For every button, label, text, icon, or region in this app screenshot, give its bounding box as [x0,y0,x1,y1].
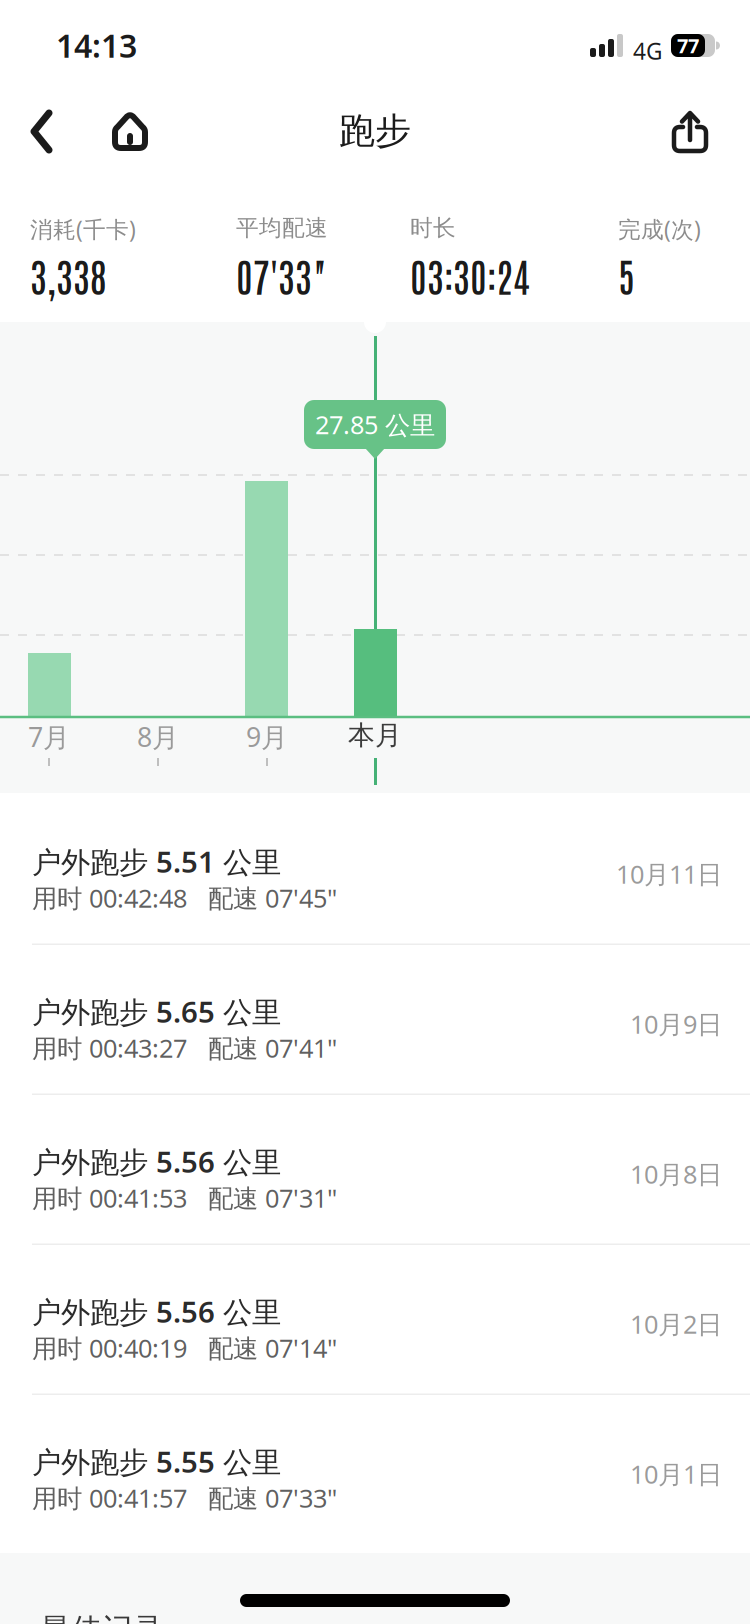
staticText: 配速 07'33" [208,1481,337,1515]
staticText: 户外跑步 5.56 公里 [32,1142,281,1181]
staticText: 户外跑步 5.65 公里 [32,992,281,1031]
staticText: 用时 00:40:19 [32,1331,187,1365]
staticText: 3,338 [30,250,107,300]
button[interactable] [29,109,55,154]
staticText: 9月 [246,719,288,754]
staticText: 时长 [410,214,456,242]
button[interactable]: 户外跑步 5.55 公里 [0,1395,750,1545]
staticText: 户外跑步 5.55 公里 [32,1442,281,1481]
staticText: 07'33" [236,250,327,300]
button[interactable] [672,109,708,153]
staticText: 10月8日 [630,1157,722,1191]
button[interactable]: 户外跑步 5.56 公里 [0,1245,750,1395]
staticText: 8月 [137,719,179,754]
staticText: 完成(次) [618,214,701,244]
staticText: 平均配速 [236,214,328,242]
staticText: 10月1日 [630,1457,722,1491]
staticText: 03:30:24 [410,250,530,300]
staticText: 用时 00:43:27 [32,1031,187,1065]
staticText: 配速 07'14" [208,1331,337,1365]
button[interactable]: 户外跑步 5.51 公里 [0,795,750,945]
button[interactable]: 户外跑步 5.56 公里 [0,1095,750,1245]
staticText: 用时 00:41:57 [32,1481,187,1515]
staticText: 77 [677,32,699,59]
staticText: 用时 00:42:48 [32,881,187,915]
staticText: 户外跑步 5.51 公里 [32,842,281,881]
staticText: 配速 07'31" [208,1181,337,1215]
staticText: 配速 07'45" [208,881,337,915]
staticText: 10月2日 [630,1307,722,1341]
staticText: 10月11日 [616,857,722,891]
staticText: 7月 [28,719,70,754]
button[interactable]: 户外跑步 5.65 公里 [0,945,750,1095]
staticText: 配速 07'41" [208,1031,337,1065]
staticText: 消耗(千卡) [30,214,136,244]
staticText: 14:13 [56,24,137,66]
staticText: 最佳记录 [40,1611,164,1624]
staticText: 10月9日 [630,1007,722,1041]
staticText: 跑步 [339,109,411,153]
staticText: 5 [618,250,635,300]
staticText: 27.85 公里 [315,408,435,441]
staticText: 4G [633,36,663,66]
staticText: 户外跑步 5.56 公里 [32,1292,281,1331]
button[interactable] [110,110,150,152]
staticText: 本月 [348,719,402,752]
staticText: 用时 00:41:53 [32,1181,187,1215]
